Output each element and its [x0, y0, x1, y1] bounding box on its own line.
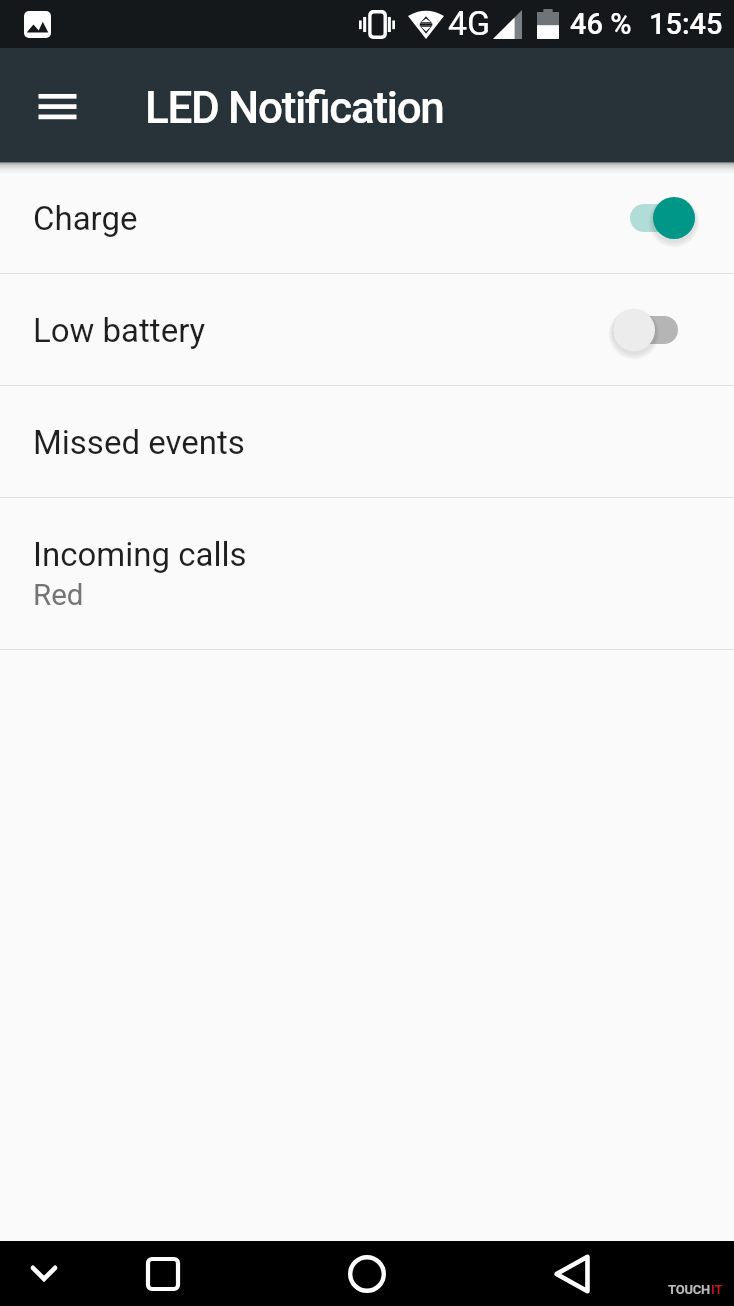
staticText: 4G [448, 3, 491, 43]
button[interactable]: Low battery [0, 274, 734, 385]
button[interactable]: Recent apps [132, 1243, 194, 1305]
button[interactable]: Charge [0, 162, 734, 273]
staticText: Low battery [33, 311, 206, 350]
staticText: IT [711, 1282, 723, 1297]
staticText: Charge [33, 199, 138, 238]
button[interactable]: Missed events [0, 386, 734, 497]
staticText: 15:45 [649, 7, 723, 41]
button[interactable]: Toggle off [594, 302, 678, 358]
button[interactable]: Back [541, 1243, 603, 1305]
staticText: Incoming calls [33, 535, 247, 574]
staticText: TOUCH [668, 1282, 711, 1297]
staticText: Missed events [33, 423, 245, 462]
button[interactable]: Hide keyboard [13, 1243, 75, 1305]
button[interactable]: Incoming calls [0, 498, 734, 649]
staticText: Red [33, 578, 84, 613]
staticText: 46 % [570, 7, 632, 41]
button[interactable]: Home [336, 1243, 398, 1305]
button[interactable]: Toggle on [611, 190, 695, 246]
staticText: LED Notification [145, 82, 444, 134]
button[interactable]: Open navigation menu [20, 68, 95, 143]
